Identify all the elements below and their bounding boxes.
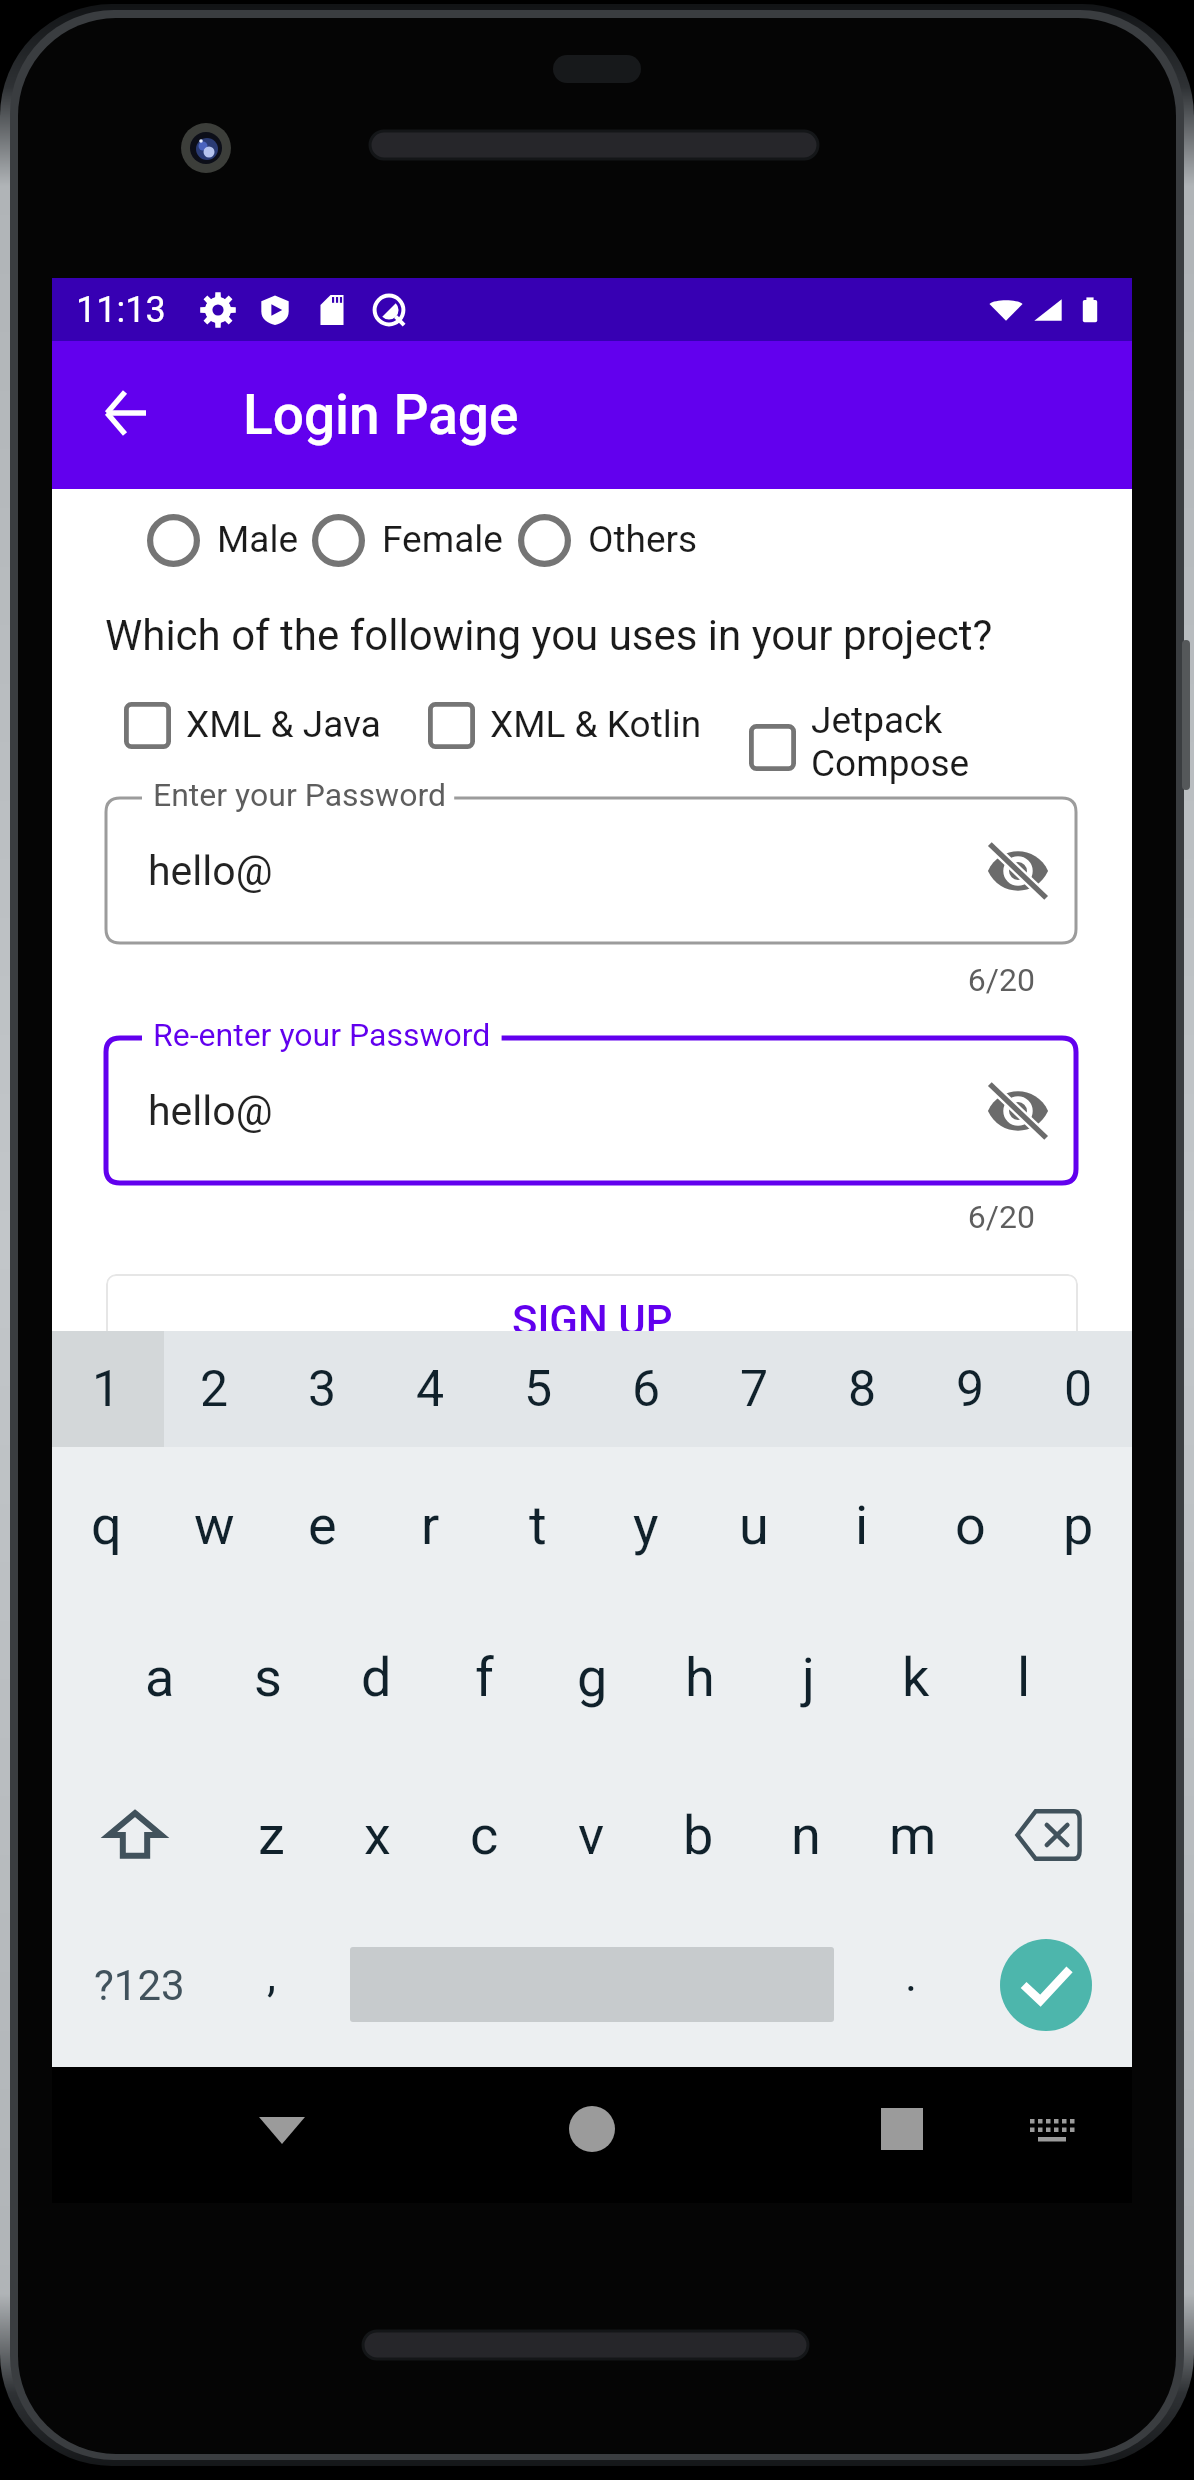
button[interactable]: i xyxy=(808,1449,916,1601)
button[interactable]: m xyxy=(859,1759,966,1911)
button[interactable]: e xyxy=(268,1449,376,1601)
button[interactable]: SIGN UP xyxy=(106,1274,1078,1414)
button[interactable]: h xyxy=(646,1601,754,1753)
staticText: 8 xyxy=(848,1360,877,1419)
staticText: Female xyxy=(382,518,503,561)
button[interactable]: XML & Kotlin xyxy=(428,702,702,749)
button[interactable]: a xyxy=(106,1601,214,1753)
button[interactable]: 9 xyxy=(916,1331,1024,1447)
button[interactable]: XML & Java xyxy=(124,702,381,749)
staticText: e xyxy=(308,1494,337,1557)
button[interactable]: f xyxy=(430,1601,538,1753)
staticText: j xyxy=(802,1646,815,1709)
staticText: 3 xyxy=(308,1360,337,1419)
staticText: Re-enter your Password xyxy=(153,1016,491,1054)
staticText: ?123 xyxy=(94,1961,185,2010)
staticText: Login Page xyxy=(243,383,519,447)
button[interactable]: 6 xyxy=(592,1331,700,1447)
staticText: y xyxy=(633,1494,659,1557)
button[interactable]: Jetpack xyxy=(749,724,970,810)
button[interactable]: p xyxy=(1024,1449,1132,1601)
button[interactable]: . xyxy=(871,1909,951,2061)
button[interactable]: Male xyxy=(147,514,299,567)
staticText: , xyxy=(267,1948,277,2002)
staticText: hello@ xyxy=(148,1087,273,1135)
button[interactable]: 5 xyxy=(484,1331,592,1447)
staticText: q xyxy=(91,1494,122,1557)
staticText: 9 xyxy=(956,1360,985,1419)
button[interactable]: s xyxy=(214,1601,322,1753)
staticText: z xyxy=(258,1804,285,1867)
button[interactable]: Shift xyxy=(52,1759,218,1911)
staticText: XML & Java xyxy=(186,703,381,746)
button[interactable]: j xyxy=(754,1601,862,1753)
button[interactable]: y xyxy=(592,1449,700,1601)
staticText: f xyxy=(475,1646,494,1709)
staticText: 2 xyxy=(200,1360,229,1419)
staticText: i xyxy=(855,1494,869,1557)
staticText: o xyxy=(955,1494,986,1557)
button[interactable]: g xyxy=(538,1601,646,1753)
button[interactable]: 1 xyxy=(52,1331,160,1447)
button[interactable]: v xyxy=(538,1759,645,1911)
staticText: . xyxy=(905,1948,918,2002)
staticText: m xyxy=(889,1804,937,1867)
staticText: l xyxy=(1017,1646,1031,1709)
staticText: 6 xyxy=(632,1360,661,1419)
staticText: 0 xyxy=(1064,1360,1093,1419)
staticText: 11:13 xyxy=(76,289,166,331)
staticText: Others xyxy=(588,518,698,561)
button[interactable]: d xyxy=(322,1601,430,1753)
button[interactable]: 3 xyxy=(268,1331,376,1447)
button[interactable]: , xyxy=(232,1909,312,2061)
button[interactable]: x xyxy=(324,1759,431,1911)
button[interactable]: n xyxy=(752,1759,859,1911)
staticText: a xyxy=(145,1646,175,1709)
button[interactable]: Female xyxy=(312,514,503,567)
button[interactable]: o xyxy=(916,1449,1024,1601)
button[interactable]: Others xyxy=(518,514,698,567)
button[interactable]: q xyxy=(52,1449,160,1601)
staticText: Enter your Password xyxy=(153,776,446,814)
button[interactable]: ?123 xyxy=(64,1909,214,2061)
button[interactable]: Show keyboard xyxy=(1012,2089,1092,2169)
button[interactable]: 4 xyxy=(376,1331,484,1447)
staticText: r xyxy=(421,1494,440,1557)
button[interactable]: w xyxy=(160,1449,268,1601)
staticText: XML & Kotlin xyxy=(490,703,702,746)
button[interactable]: Back xyxy=(77,368,173,458)
staticText: hello@ xyxy=(148,847,273,895)
staticText: 5 xyxy=(524,1360,553,1419)
button[interactable]: Back xyxy=(242,2089,322,2169)
button[interactable]: Enter xyxy=(954,1909,1138,2061)
staticText: 6/20 xyxy=(52,961,1035,999)
staticText: SIGN UP xyxy=(512,1296,673,1345)
button[interactable]: 8 xyxy=(808,1331,916,1447)
button[interactable]: t xyxy=(484,1449,592,1601)
button[interactable]: 2 xyxy=(160,1331,268,1447)
button[interactable]: Recents xyxy=(862,2089,942,2169)
staticText: Male xyxy=(217,518,299,561)
staticText: 1 xyxy=(92,1360,121,1419)
staticText: c xyxy=(470,1804,499,1867)
staticText: g xyxy=(577,1646,608,1709)
button[interactable]: l xyxy=(970,1601,1078,1753)
staticText: 6/20 xyxy=(52,1198,1035,1236)
staticText: n xyxy=(791,1804,821,1867)
staticText: p xyxy=(1063,1494,1094,1557)
button[interactable]: 0 xyxy=(1024,1331,1132,1447)
staticText: Which of the following you uses in your … xyxy=(105,611,993,660)
button[interactable]: z xyxy=(218,1759,324,1911)
button[interactable]: Toggle password visibility xyxy=(986,1079,1050,1143)
button[interactable]: k xyxy=(862,1601,970,1753)
staticText: x xyxy=(364,1804,391,1867)
button[interactable]: r xyxy=(376,1449,484,1601)
button[interactable]: Toggle password visibility xyxy=(986,839,1050,903)
button[interactable]: 7 xyxy=(700,1331,808,1447)
button[interactable]: Backspace xyxy=(966,1759,1132,1911)
button[interactable]: u xyxy=(700,1449,808,1601)
button[interactable]: Home xyxy=(552,2089,632,2169)
button[interactable]: b xyxy=(645,1759,752,1911)
button[interactable]: c xyxy=(431,1759,538,1911)
